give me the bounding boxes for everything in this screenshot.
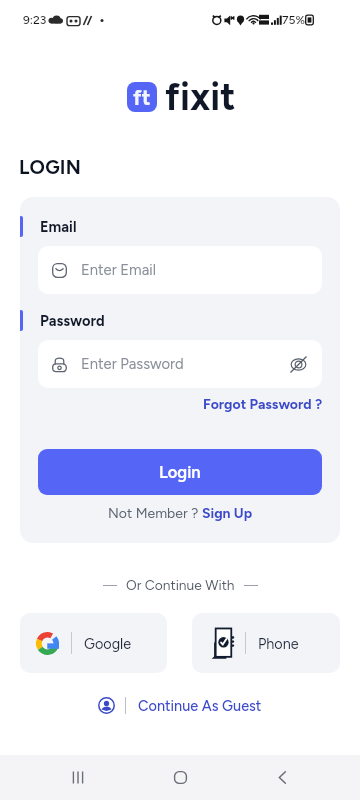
- staticText: ft: [133, 84, 151, 110]
- button[interactable]: Enter Password: [38, 340, 322, 388]
- button[interactable]: Forgot Password ?: [203, 393, 323, 416]
- button[interactable]: Back: [258, 755, 306, 800]
- button[interactable]: Continue As Guest: [98, 695, 262, 716]
- staticText: fixit: [165, 74, 236, 120]
- staticText: Email: [40, 218, 77, 236]
- button[interactable]: Home: [156, 755, 204, 800]
- button[interactable]: Phone: [192, 613, 340, 673]
- staticText: Continue As Guest: [138, 697, 262, 714]
- button[interactable]: Show password: [286, 352, 310, 376]
- staticText: Login: [159, 462, 201, 482]
- staticText: 9:23: [23, 13, 47, 27]
- button[interactable]: Recents: [54, 755, 102, 800]
- staticText: LOGIN: [19, 155, 82, 178]
- button[interactable]: Login: [38, 449, 322, 495]
- staticText: 75%: [282, 13, 305, 27]
- staticText: Not Member ?: [108, 505, 202, 522]
- staticText: Or Continue With: [126, 577, 235, 593]
- staticText: Enter Password: [81, 355, 184, 373]
- staticText: Password: [40, 312, 105, 330]
- button[interactable]: Sign Up: [202, 505, 253, 522]
- button[interactable]: Enter Email: [38, 246, 322, 294]
- staticText: Phone: [258, 635, 299, 652]
- button[interactable]: Google: [20, 613, 167, 673]
- staticText: Google: [84, 635, 132, 652]
- staticText: Enter Email: [81, 261, 156, 279]
